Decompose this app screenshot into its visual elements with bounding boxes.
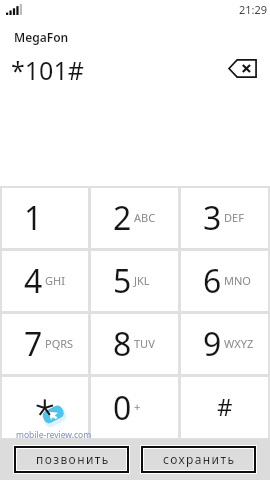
staticText: TUV [134, 336, 155, 351]
staticText: позвонить [36, 451, 110, 467]
staticText: DEF [224, 210, 244, 225]
button[interactable]: позвонить [17, 449, 126, 470]
button[interactable]: сохранить [144, 449, 253, 470]
staticText: PQRS [45, 336, 74, 351]
button[interactable]: 4 [2, 251, 88, 311]
staticText: сохранить [163, 451, 236, 467]
staticText: mobile-review.com [16, 429, 92, 441]
staticText: ABC [134, 210, 156, 225]
button[interactable]: Star [2, 377, 88, 438]
button[interactable]: 3 [181, 188, 268, 248]
staticText: # [217, 390, 233, 423]
button[interactable]: 8 [91, 314, 178, 374]
staticText: 1 [24, 196, 43, 240]
button[interactable]: 9 [181, 314, 268, 374]
button[interactable]: Backspace [228, 59, 257, 78]
staticText: 5 [113, 259, 132, 303]
button[interactable]: 5 [91, 251, 178, 311]
staticText: WXYZ [224, 336, 254, 351]
staticText: 2 [113, 196, 132, 240]
staticText: MegaFon [14, 29, 69, 45]
button[interactable]: 7 [2, 314, 88, 374]
staticText: 21:29 [239, 2, 268, 17]
button[interactable]: 0 [91, 377, 178, 438]
staticText: JKL [134, 273, 150, 288]
staticText: 8 [113, 322, 132, 366]
staticText: 0 [113, 386, 132, 430]
button[interactable]: 1 [2, 188, 88, 248]
button[interactable]: Hash [181, 377, 268, 438]
button[interactable]: 2 [91, 188, 178, 248]
staticText: 4 [24, 259, 43, 303]
staticText: MNO [224, 273, 251, 288]
staticText: GHI [45, 273, 65, 288]
staticText: 9 [203, 322, 222, 366]
staticText: 7 [24, 322, 43, 366]
staticText: + [134, 399, 141, 414]
staticText: *101# [11, 53, 84, 87]
staticText: 6 [203, 259, 222, 303]
staticText: 3 [203, 196, 222, 240]
button[interactable]: 6 [181, 251, 268, 311]
